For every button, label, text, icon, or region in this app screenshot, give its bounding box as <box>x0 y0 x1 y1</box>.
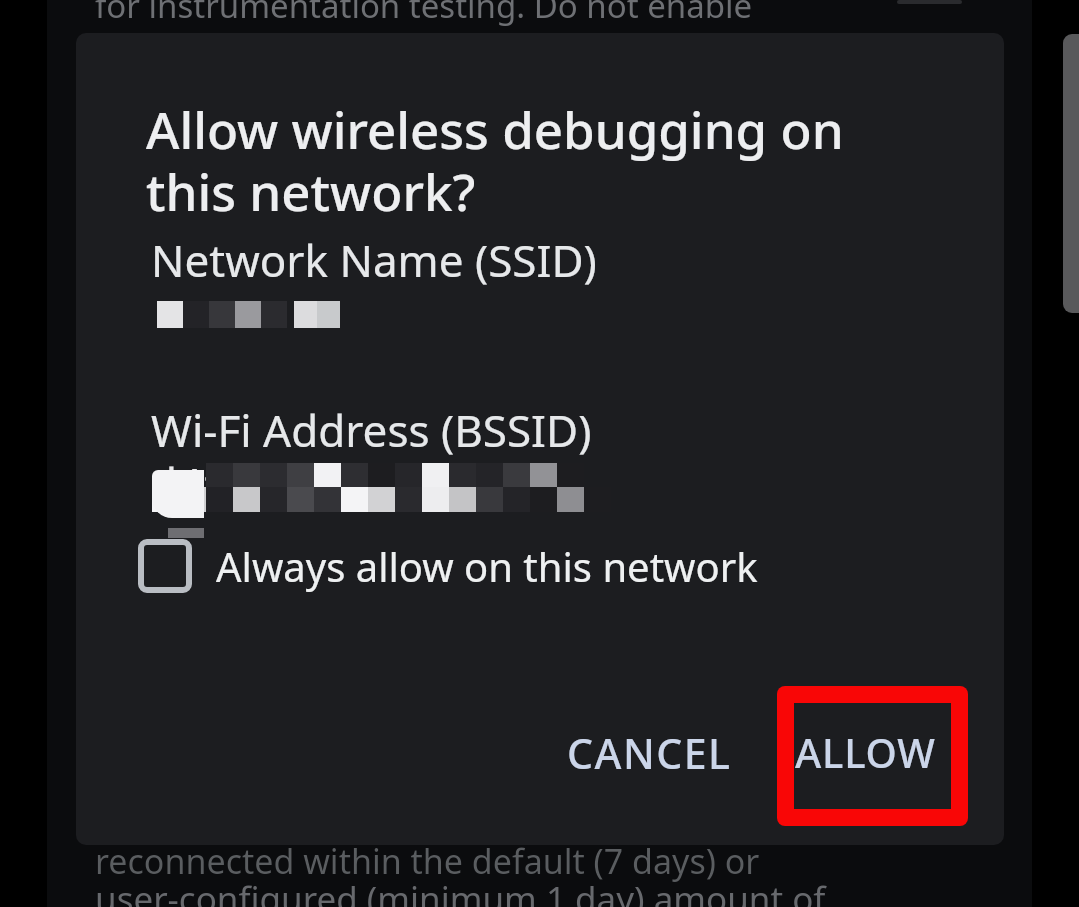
button[interactable]: Always allow on this network <box>138 523 758 609</box>
staticText: ALLOW <box>795 725 936 779</box>
staticText: Always allow on this network <box>216 539 758 593</box>
staticText: CANCEL <box>567 725 732 781</box>
staticText: d4: <box>150 453 215 513</box>
staticText: Allow wireless debugging on this network… <box>146 94 844 226</box>
staticText: Wi-Fi Address (BSSID) <box>151 400 592 460</box>
staticText: for instrumentation testing. Do not enab… <box>95 0 753 28</box>
button[interactable]: ALLOW <box>771 701 960 803</box>
button[interactable]: CANCEL <box>543 701 756 805</box>
staticText: reconnected within the default (7 days) … <box>95 838 760 884</box>
staticText: user-configured (minimum 1 day) amount o… <box>95 875 826 907</box>
staticText: Network Name (SSID) <box>151 230 597 290</box>
